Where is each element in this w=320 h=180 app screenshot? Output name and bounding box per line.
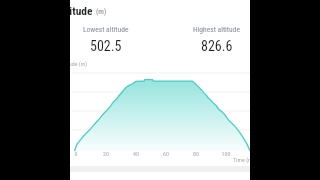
staticText: 60 xyxy=(159,150,173,157)
button[interactable]: Highest altitude xyxy=(161,25,272,54)
staticText: (m) xyxy=(96,7,107,16)
staticText: Altitude (m) xyxy=(59,60,88,67)
staticText: 100 xyxy=(219,150,233,157)
button[interactable]: Lowest altitude xyxy=(50,25,161,54)
staticText: 80 xyxy=(189,150,203,157)
staticText: 0 xyxy=(69,150,83,157)
staticText: 502.5 xyxy=(90,38,122,54)
staticText: Time (min) xyxy=(233,156,259,163)
staticText: Highest altitude xyxy=(193,25,240,34)
staticText: 20 xyxy=(99,150,113,157)
staticText: Lowest altitude xyxy=(83,25,129,34)
staticText: 40 xyxy=(129,150,143,157)
staticText: 826.6 xyxy=(201,38,233,54)
staticText: Altitude xyxy=(56,4,93,17)
